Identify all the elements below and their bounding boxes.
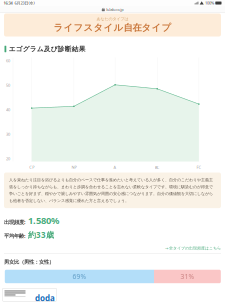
staticText: 平均年齢: <box>4 232 25 239</box>
staticText: 約33歳 <box>28 229 54 240</box>
staticText: b-lab.co.jp <box>106 7 123 12</box>
staticText: あなたのタイプは <box>96 17 128 21</box>
staticText: エゴグラム及び診断結果 <box>9 45 86 53</box>
button[interactable]: doda <box>0 288 56 301</box>
button[interactable]: → 全タイプの出現頻度はこちら <box>0 244 221 252</box>
staticText: 40 <box>6 107 10 112</box>
staticText: 100% <box>205 0 214 6</box>
staticText: 人を束ねたり注目を浴びるよりも自分のペースで仕事を進めたいと考えている人が多く、… <box>9 177 213 203</box>
staticText: 20 <box>6 156 10 161</box>
staticText: 6月23日(水) <box>12 0 34 6</box>
staticText: 16:34 <box>3 0 12 6</box>
staticText: 30 <box>6 131 10 137</box>
staticText: → 全タイプの出現頻度はこちら <box>165 246 221 251</box>
staticText: 出現頻度: <box>4 218 25 225</box>
staticText: CP <box>29 164 34 170</box>
staticText: AC <box>155 164 160 170</box>
staticText: A <box>114 164 117 170</box>
staticText: NP <box>71 164 76 170</box>
staticText: FC <box>196 164 201 170</box>
staticText: 男女比（男性：女性） <box>4 259 54 265</box>
staticText: 60 <box>6 58 10 63</box>
staticText: 1.580% <box>28 214 59 227</box>
staticText: 31% <box>180 272 194 281</box>
staticText: 50 <box>6 82 10 88</box>
staticText: ライフスタイル自在タイプ <box>53 22 171 33</box>
staticText: 69% <box>72 272 86 281</box>
staticText: doda <box>35 293 55 302</box>
